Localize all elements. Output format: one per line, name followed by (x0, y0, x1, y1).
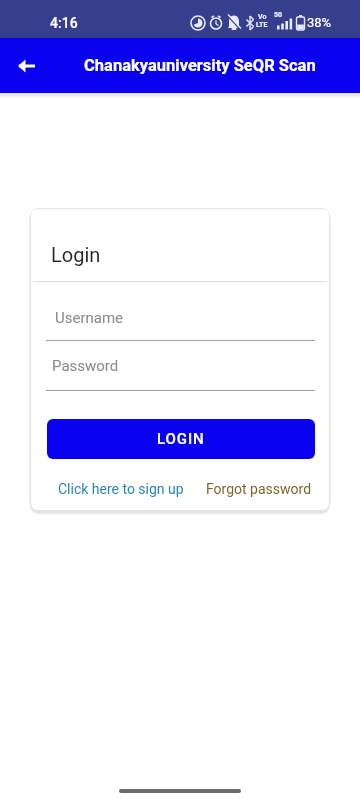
staticText: 38% (307, 15, 332, 30)
button[interactable]: Click here to sign up (52, 478, 178, 494)
staticText: LTE (256, 21, 268, 29)
button[interactable]: Username (46, 300, 315, 341)
button[interactable]: Forgot password (200, 478, 306, 494)
staticText: Vo (258, 13, 267, 21)
staticText: 50 (274, 11, 283, 19)
staticText: Chanakyauniversity SeQR Scan (84, 56, 316, 75)
staticText: Login (51, 243, 101, 266)
staticText: 4:16 (50, 15, 78, 31)
staticText: LOGIN (157, 430, 205, 448)
button[interactable]: Password (46, 350, 315, 391)
staticText: Username (55, 309, 124, 327)
button[interactable]: LOGIN (47, 419, 315, 459)
staticText: Click here to sign up (58, 481, 184, 497)
staticText: Forgot password (206, 481, 312, 497)
staticText: Password (52, 357, 119, 375)
button[interactable] (13, 52, 41, 80)
